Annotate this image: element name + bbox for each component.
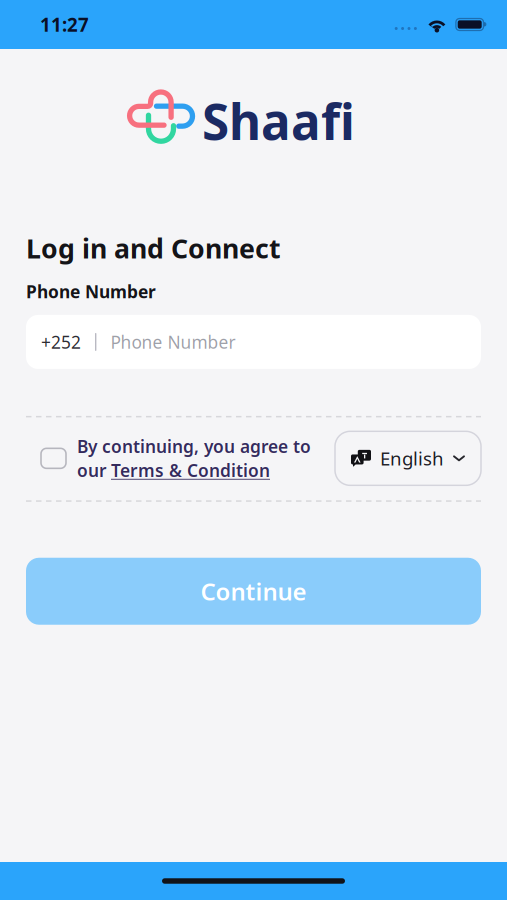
staticText: Log in and Connect: [26, 230, 281, 266]
button[interactable]: English: [335, 431, 481, 485]
button[interactable]: Agree to terms and conditions: [41, 448, 66, 468]
staticText: English: [380, 446, 444, 471]
staticText: Phone Number: [26, 280, 156, 303]
staticText: Phone Number: [110, 330, 235, 353]
staticText: Shaafi: [202, 88, 355, 153]
button[interactable]: Continue: [26, 558, 481, 625]
staticText: By continuing, you agree to: [77, 435, 311, 458]
staticText: Continue: [200, 575, 306, 607]
staticText: 11:27: [40, 12, 89, 37]
staticText: Terms & Condition: [111, 459, 270, 482]
button[interactable]: Terms & Condition: [111, 459, 270, 482]
staticText: our: [77, 459, 107, 482]
staticText: +252: [41, 330, 81, 353]
